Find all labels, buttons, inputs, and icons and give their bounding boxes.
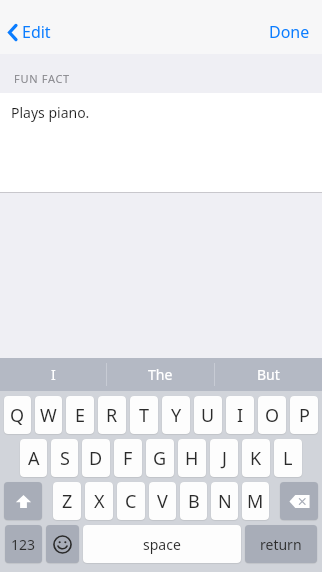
staticText: space — [143, 535, 181, 554]
button[interactable]: O — [258, 396, 286, 434]
staticText: FUN FACT — [14, 71, 70, 86]
button[interactable]: Z — [53, 482, 81, 520]
button[interactable]: 123 — [5, 525, 42, 563]
staticText: J — [222, 446, 227, 471]
button[interactable]: E — [66, 396, 94, 434]
staticText: S — [60, 446, 70, 471]
button[interactable]: J — [210, 439, 238, 477]
button[interactable]: S — [51, 439, 78, 477]
staticText: G — [153, 446, 167, 471]
staticText: V — [157, 489, 168, 514]
button[interactable]: Edit — [0, 16, 61, 48]
staticText: K — [250, 446, 262, 471]
button[interactable]: Emoji — [46, 525, 79, 563]
button[interactable]: N — [211, 482, 238, 520]
staticText: R — [106, 403, 118, 428]
button[interactable]: Delete — [280, 482, 318, 520]
button[interactable]: L — [274, 439, 302, 477]
staticText: Plays piano. — [11, 103, 90, 122]
staticText: P — [299, 403, 310, 428]
button[interactable]: U — [194, 396, 222, 434]
button[interactable]: G — [146, 439, 174, 477]
button[interactable]: The — [107, 358, 214, 391]
button[interactable]: P — [290, 396, 318, 434]
button[interactable]: return — [245, 525, 317, 563]
staticText: Done — [269, 21, 310, 43]
button[interactable]: F — [114, 439, 142, 477]
staticText: Y — [171, 403, 182, 428]
button[interactable]: X — [85, 482, 113, 520]
staticText: T — [139, 403, 150, 428]
button[interactable]: Shift — [4, 482, 42, 520]
button[interactable]: C — [117, 482, 145, 520]
staticText: L — [283, 446, 293, 471]
staticText: F — [123, 446, 133, 471]
button[interactable]: But — [215, 358, 322, 391]
button[interactable]: R — [98, 396, 126, 434]
button[interactable]: B — [180, 482, 207, 520]
staticText: M — [247, 489, 264, 514]
staticText: I — [237, 403, 244, 428]
staticText: N — [218, 489, 232, 514]
staticText: Edit — [22, 21, 51, 43]
staticText: B — [188, 489, 200, 514]
staticText: The — [148, 365, 173, 384]
staticText: U — [201, 403, 215, 428]
staticText: Q — [10, 403, 25, 428]
staticText: C — [125, 489, 137, 514]
staticText: return — [260, 535, 302, 554]
button[interactable]: Q — [4, 396, 31, 434]
staticText: 123 — [11, 535, 36, 554]
button[interactable]: Plays piano. — [0, 93, 322, 193]
staticText: H — [185, 446, 199, 471]
button[interactable]: M — [242, 482, 269, 520]
button[interactable]: Done — [257, 16, 322, 48]
staticText: E — [75, 403, 86, 428]
staticText: I — [51, 365, 56, 384]
button[interactable]: V — [149, 482, 176, 520]
staticText: X — [94, 489, 105, 514]
staticText: Z — [62, 489, 73, 514]
staticText: But — [257, 365, 280, 384]
staticText: D — [89, 446, 103, 471]
staticText: W — [40, 403, 57, 428]
staticText: O — [265, 403, 280, 428]
button[interactable]: A — [20, 439, 47, 477]
button[interactable]: Y — [162, 396, 190, 434]
button[interactable]: D — [82, 439, 110, 477]
button[interactable]: K — [242, 439, 270, 477]
button[interactable]: W — [35, 396, 62, 434]
staticText: A — [28, 446, 40, 471]
button[interactable]: space — [83, 525, 241, 563]
button[interactable]: I — [226, 396, 254, 434]
button[interactable]: H — [178, 439, 206, 477]
button[interactable]: I — [0, 358, 106, 391]
button[interactable]: T — [130, 396, 158, 434]
